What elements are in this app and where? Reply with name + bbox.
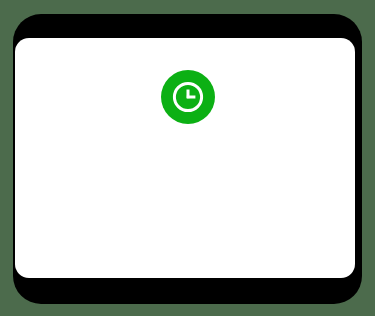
button[interactable]: Clock bbox=[161, 70, 215, 124]
